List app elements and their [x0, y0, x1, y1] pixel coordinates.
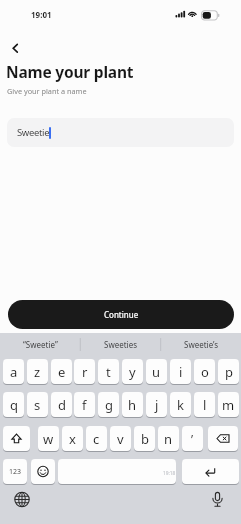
staticText: q	[10, 396, 18, 414]
staticText: s	[34, 396, 41, 414]
button[interactable]: a	[3, 359, 24, 384]
staticText: m	[222, 396, 235, 414]
staticText: c	[93, 430, 100, 448]
staticText: d	[58, 396, 66, 414]
staticText: “Sweetie”	[23, 339, 58, 350]
staticText: r	[82, 363, 88, 381]
staticText: 19:18	[163, 470, 176, 477]
button[interactable]: “Sweetie”	[0, 334, 80, 355]
button[interactable]	[182, 459, 239, 484]
button[interactable]: w	[38, 426, 59, 451]
button[interactable]: s	[27, 392, 48, 417]
staticText: g	[105, 396, 113, 414]
staticText: Sweeties	[104, 339, 137, 350]
staticText: Give your plant a name	[7, 86, 87, 96]
button[interactable]: m	[218, 392, 239, 417]
staticText: x	[69, 430, 76, 448]
button[interactable]: x	[62, 426, 83, 451]
button[interactable]: q	[3, 392, 24, 417]
button[interactable]	[12, 490, 32, 510]
button[interactable]: u	[146, 359, 167, 384]
button[interactable]: b	[134, 426, 155, 451]
button[interactable]: g	[98, 392, 119, 417]
button[interactable]	[3, 426, 30, 451]
staticText: w	[43, 430, 54, 448]
staticText: 19:01	[31, 9, 52, 20]
staticText: 123	[9, 467, 22, 477]
button[interactable]: n	[158, 426, 179, 451]
button[interactable]: 123	[3, 459, 27, 484]
staticText: t	[106, 363, 111, 381]
staticText: v	[117, 430, 124, 448]
button[interactable]: p	[218, 359, 239, 384]
button[interactable]: i	[170, 359, 191, 384]
staticText: e	[58, 363, 66, 381]
button[interactable]: Sweetie	[7, 118, 234, 147]
staticText: y	[129, 363, 136, 381]
button[interactable]: l	[194, 392, 215, 417]
staticText: k	[177, 396, 184, 414]
staticText: u	[152, 363, 161, 381]
button[interactable]: Sweetie’s	[161, 334, 241, 355]
staticText: o	[201, 363, 209, 381]
staticText: Continue	[104, 309, 139, 320]
button[interactable]: t	[98, 359, 119, 384]
button[interactable]: j	[146, 392, 167, 417]
button[interactable]: z	[27, 359, 48, 384]
staticText: Sweetie’s	[184, 339, 219, 350]
button[interactable]: Sweeties	[80, 334, 160, 355]
button[interactable]: h	[122, 392, 143, 417]
button[interactable]: y	[122, 359, 143, 384]
staticText: i	[179, 363, 183, 381]
button[interactable]	[6, 38, 26, 58]
button[interactable]: f	[74, 392, 95, 417]
staticText: b	[141, 430, 149, 448]
button[interactable]	[31, 459, 55, 484]
staticText: Name your plant	[6, 61, 134, 82]
button[interactable]	[58, 459, 176, 484]
staticText: l	[203, 396, 207, 414]
staticText: h	[128, 396, 137, 414]
button[interactable]	[207, 490, 227, 510]
button[interactable]: o	[194, 359, 215, 384]
button[interactable]: v	[110, 426, 131, 451]
button[interactable]: r	[74, 359, 95, 384]
button[interactable]	[208, 426, 238, 451]
button[interactable]: ’	[182, 426, 203, 451]
staticText: n	[164, 430, 173, 448]
staticText: z	[34, 363, 41, 381]
staticText: a	[10, 363, 18, 381]
button[interactable]: Continue	[8, 300, 234, 329]
button[interactable]: d	[51, 392, 72, 417]
button[interactable]: e	[51, 359, 72, 384]
staticText: f	[82, 396, 87, 414]
staticText: p	[225, 363, 233, 381]
button[interactable]: c	[86, 426, 107, 451]
staticText: Sweetie	[17, 126, 50, 139]
staticText: j	[155, 396, 159, 414]
button[interactable]: k	[170, 392, 191, 417]
staticText: ’	[191, 431, 194, 447]
